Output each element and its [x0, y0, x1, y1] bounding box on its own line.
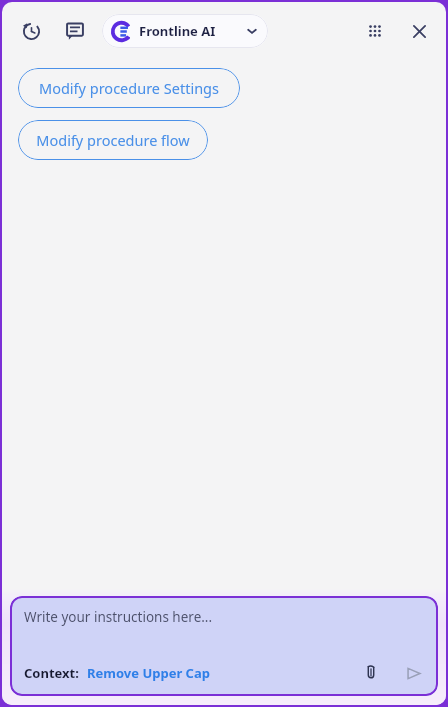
button[interactable]: Close	[404, 16, 434, 46]
button[interactable]: Modify procedure flow	[18, 120, 208, 160]
staticText: Context:	[24, 664, 79, 682]
staticText: Remove Upper Cap	[87, 664, 210, 682]
staticText: Modify procedure Settings	[39, 78, 219, 98]
button[interactable]: Attach file	[358, 660, 384, 686]
button[interactable]: Send	[400, 660, 426, 686]
button[interactable]: Chat	[60, 16, 90, 46]
button[interactable]: History	[16, 16, 46, 46]
staticText: Modify procedure flow	[36, 130, 190, 150]
staticText: Frontline AI	[139, 22, 216, 40]
button[interactable]: Modify procedure Settings	[18, 68, 240, 108]
staticText: Write your instructions here...	[24, 608, 213, 626]
button[interactable]: Apps	[360, 16, 390, 46]
button[interactable]: Frontline AI	[102, 14, 268, 48]
button[interactable]: Remove Upper Cap	[87, 664, 210, 682]
button[interactable]: Write your instructions here...	[10, 596, 438, 696]
